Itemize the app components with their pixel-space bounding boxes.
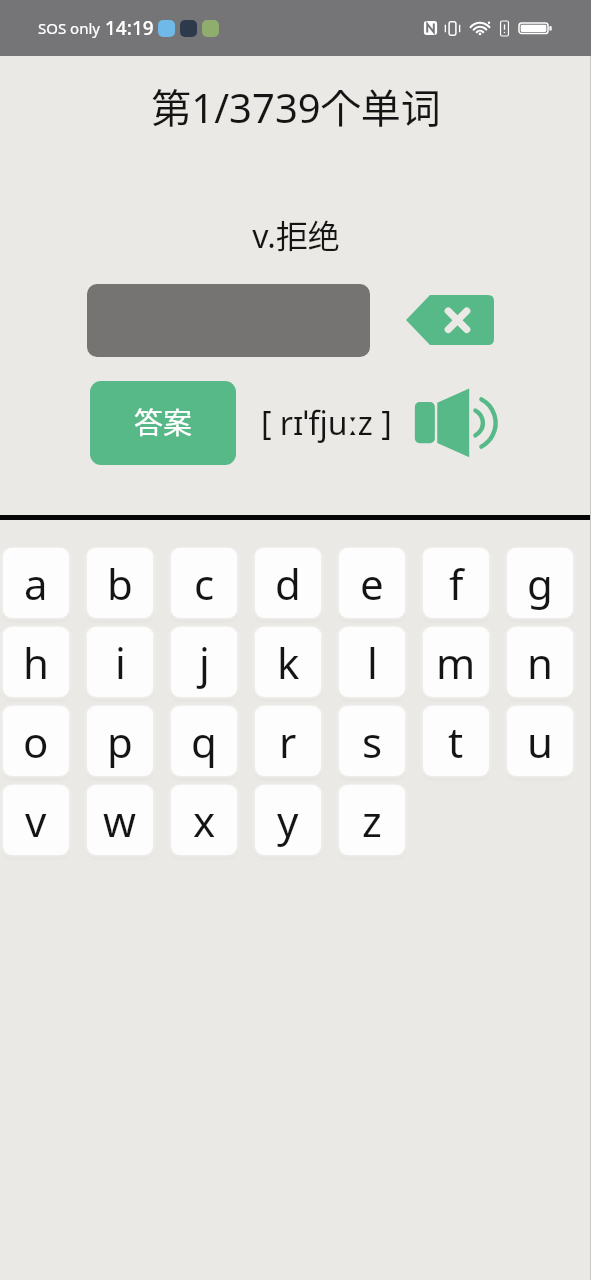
button[interactable]: h xyxy=(3,627,69,697)
button[interactable]: Backspace xyxy=(406,295,494,345)
button[interactable]: v xyxy=(3,785,69,855)
staticText: b xyxy=(107,555,133,612)
button[interactable]: f xyxy=(423,548,489,618)
button[interactable]: n xyxy=(507,627,573,697)
button[interactable]: s xyxy=(339,706,405,776)
staticText: m xyxy=(436,634,476,691)
staticText: n xyxy=(527,634,553,691)
staticText: c xyxy=(194,555,215,612)
button[interactable]: t xyxy=(423,706,489,776)
button[interactable]: k xyxy=(255,627,321,697)
staticText: i xyxy=(115,634,126,691)
button[interactable]: r xyxy=(255,706,321,776)
button[interactable]: g xyxy=(507,548,573,618)
staticText: t xyxy=(448,713,464,770)
staticText: 第1/3739个单词 xyxy=(151,77,441,135)
button[interactable]: e xyxy=(339,548,405,618)
staticText: 答案 xyxy=(134,400,193,442)
staticText: SOS only xyxy=(38,18,100,38)
staticText: v.拒绝 xyxy=(252,211,340,257)
button[interactable]: q xyxy=(171,706,237,776)
staticText: h xyxy=(23,634,49,691)
button[interactable]: u xyxy=(507,706,573,776)
button[interactable]: i xyxy=(87,627,153,697)
button[interactable]: l xyxy=(339,627,405,697)
button[interactable]: p xyxy=(87,706,153,776)
staticText: x xyxy=(193,792,216,849)
staticText: j xyxy=(199,634,210,691)
button[interactable]: w xyxy=(87,785,153,855)
button[interactable]: a xyxy=(3,548,69,618)
staticText: 14:19 xyxy=(105,15,154,41)
button[interactable]: m xyxy=(423,627,489,697)
staticText: q xyxy=(191,713,217,770)
staticText: u xyxy=(527,713,553,770)
staticText: g xyxy=(527,555,553,612)
staticText: k xyxy=(277,634,300,691)
staticText: o xyxy=(23,713,49,770)
staticText: [ rɪˈfjuːz ] xyxy=(261,401,392,445)
staticText: e xyxy=(360,555,384,612)
button[interactable]: c xyxy=(171,548,237,618)
staticText: l xyxy=(367,634,378,691)
button[interactable]: Play pronunciation xyxy=(414,387,499,459)
staticText: d xyxy=(275,555,301,612)
staticText: f xyxy=(449,555,464,612)
button[interactable]: o xyxy=(3,706,69,776)
staticText: s xyxy=(362,713,383,770)
button[interactable]: 答案 xyxy=(90,381,236,465)
staticText: r xyxy=(279,713,297,770)
button[interactable]: j xyxy=(171,627,237,697)
staticText: a xyxy=(24,555,48,612)
button[interactable]: x xyxy=(171,785,237,855)
staticText: y xyxy=(277,792,299,849)
staticText: p xyxy=(107,713,133,770)
button[interactable]: y xyxy=(255,785,321,855)
button[interactable]: z xyxy=(339,785,405,855)
staticText: w xyxy=(103,792,137,849)
staticText: v xyxy=(25,792,47,849)
button[interactable]: b xyxy=(87,548,153,618)
button[interactable]: d xyxy=(255,548,321,618)
button[interactable]: Answer input xyxy=(87,284,370,357)
staticText: z xyxy=(362,792,382,849)
